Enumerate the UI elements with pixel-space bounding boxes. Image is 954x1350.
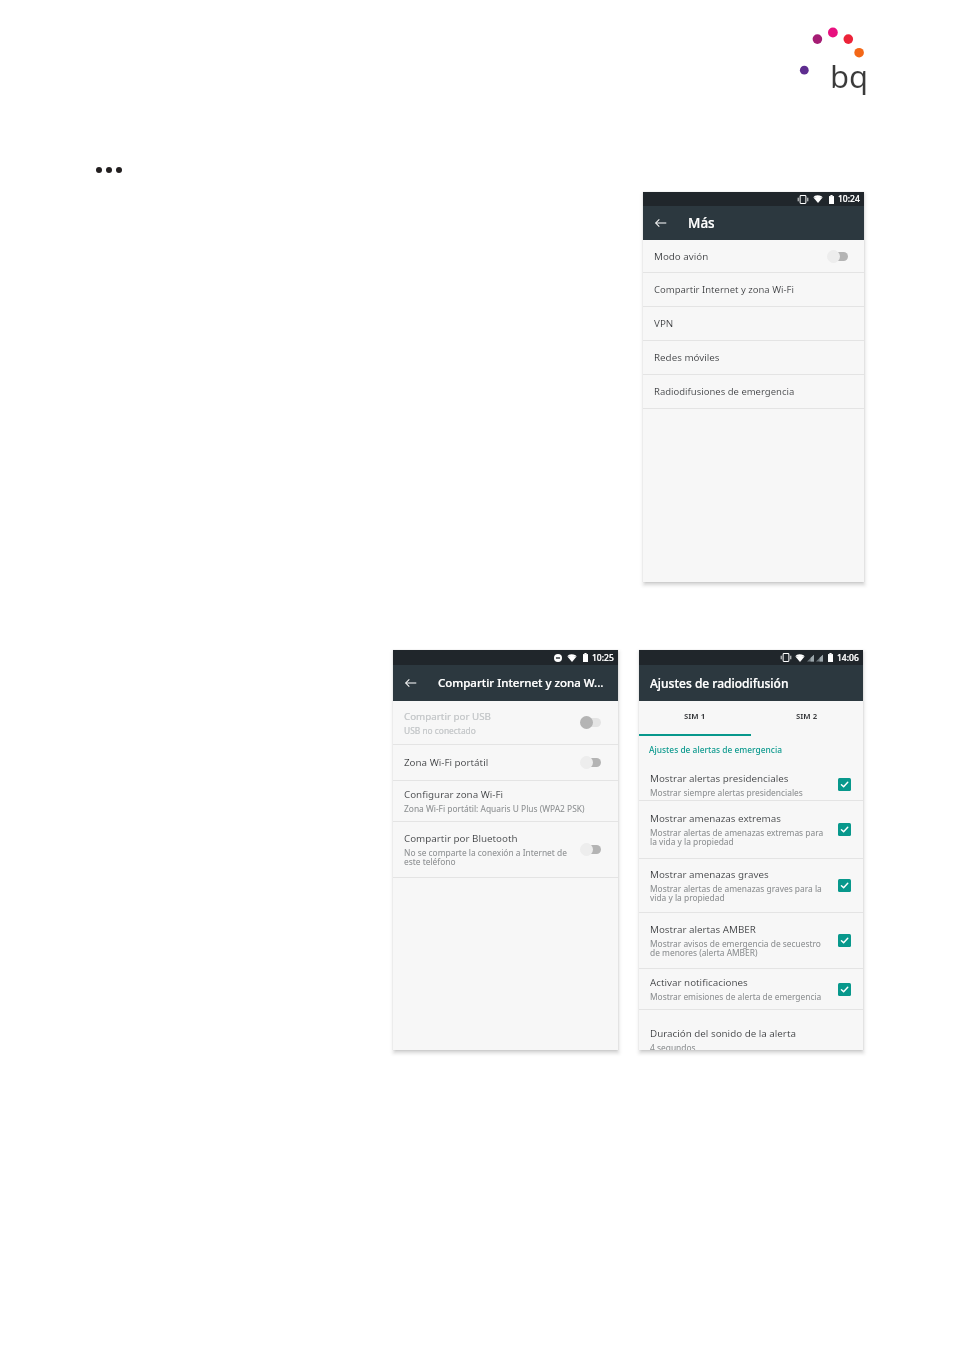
staticText: Zona Wi-Fi portátil: Aquaris U Plus (WPA… xyxy=(404,803,585,814)
staticText: Mostrar emisiones de alerta de emergenci… xyxy=(650,991,822,1002)
staticText: Activar notificaciones xyxy=(650,976,748,989)
button[interactable]: Redes móviles xyxy=(643,341,864,374)
staticText: Compartir por USB xyxy=(404,710,491,723)
button[interactable]: Modo avión xyxy=(643,240,864,272)
staticText: Redes móviles xyxy=(654,351,720,364)
button[interactable]: VPN xyxy=(643,307,864,340)
button[interactable]: SIM 2 xyxy=(751,701,863,736)
staticText: 4 segundos xyxy=(650,1042,696,1050)
staticText: Mostrar alertas AMBER xyxy=(650,923,756,936)
staticText: USB no conectado xyxy=(404,725,476,736)
staticText: Ajustes de radiodifusión xyxy=(650,675,789,691)
staticText: Más xyxy=(688,214,715,232)
button[interactable]: Mostrar amenazas extremas xyxy=(639,801,863,858)
staticText: 10:25 xyxy=(592,652,614,664)
staticText: Mostrar alertas presidenciales xyxy=(650,772,789,785)
staticText: Mostrar siempre alertas presidenciales xyxy=(650,787,803,798)
staticText: 10:24 xyxy=(838,193,860,205)
button[interactable]: Compartir por USB xyxy=(393,701,618,744)
button[interactable]: Activar notificaciones xyxy=(639,969,863,1009)
staticText: VPN xyxy=(654,317,674,330)
staticText: Mostrar amenazas extremas xyxy=(650,812,781,825)
staticText: SIM 1 xyxy=(684,711,706,722)
staticText: 14:06 xyxy=(837,652,859,664)
button[interactable]: Mostrar amenazas graves xyxy=(639,859,863,912)
staticText: Modo avión xyxy=(654,250,709,263)
button[interactable]: Compartir por Bluetooth xyxy=(393,822,618,877)
staticText: SIM 2 xyxy=(796,711,818,722)
staticText: Mostrar amenazas graves xyxy=(650,868,769,881)
button[interactable]: Back xyxy=(652,214,670,232)
button[interactable]: Configurar zona Wi-Fi xyxy=(393,781,618,821)
staticText: Mostrar avisos de emergencia de secuestr… xyxy=(650,938,825,959)
button[interactable]: Compartir Internet y zona Wi-Fi xyxy=(643,273,864,306)
staticText: Radiodifusiones de emergencia xyxy=(654,385,795,398)
staticText: No se comparte la conexión a Internet de… xyxy=(404,847,567,868)
staticText: Duración del sonido de la alerta xyxy=(650,1027,796,1040)
button[interactable]: Radiodifusiones de emergencia xyxy=(643,375,864,408)
staticText: Compartir Internet y zona W... xyxy=(438,675,604,691)
staticText: bq xyxy=(830,55,869,97)
button[interactable]: Duración del sonido de la alerta xyxy=(639,1010,863,1050)
button[interactable]: Mostrar alertas AMBER xyxy=(639,913,863,968)
staticText: Compartir Internet y zona Wi-Fi xyxy=(654,283,794,296)
staticText: Mostrar alertas de amenazas graves para … xyxy=(650,883,825,904)
staticText: Configurar zona Wi-Fi xyxy=(404,788,504,801)
button[interactable]: Back xyxy=(402,674,420,692)
staticText: Zona Wi-Fi portátil xyxy=(404,756,489,769)
button[interactable]: SIM 1 xyxy=(639,701,751,736)
button[interactable]: Zona Wi-Fi portátil xyxy=(393,745,618,780)
staticText: Compartir por Bluetooth xyxy=(404,832,518,845)
button[interactable]: Mostrar alertas presidenciales xyxy=(639,769,863,800)
staticText: Ajustes de alertas de emergencia xyxy=(649,744,783,755)
staticText: Mostrar alertas de amenazas extremas par… xyxy=(650,827,825,848)
